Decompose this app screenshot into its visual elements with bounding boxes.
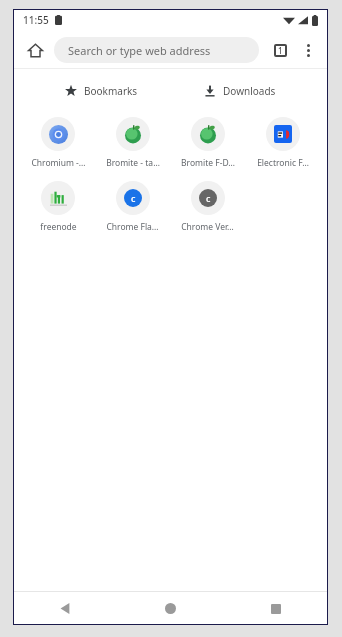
staticText: Bromite - ta… [106, 157, 160, 169]
staticText: c [131, 192, 136, 204]
button[interactable]: Recent apps [223, 592, 328, 625]
button[interactable]: More options [295, 37, 321, 63]
staticText: Chrome Ver… [181, 221, 234, 233]
staticText: Search or type web address [68, 43, 211, 58]
button[interactable]: Home [118, 592, 223, 625]
button[interactable]: Chromium -… [21, 115, 95, 171]
button[interactable]: Back [13, 592, 118, 625]
button[interactable]: Home [20, 35, 50, 65]
button[interactable]: Tabs: 1 [267, 37, 293, 63]
staticText: 11:55 [23, 13, 49, 27]
staticText: c [206, 192, 211, 204]
button[interactable]: freenode [21, 179, 95, 235]
button[interactable]: Downloads [198, 81, 282, 101]
button[interactable]: Bromite F-D… [170, 115, 245, 171]
staticText: Downloads [223, 84, 276, 98]
button[interactable]: Bromite - ta… [95, 115, 170, 171]
button[interactable]: Bookmarks [59, 81, 144, 101]
button[interactable]: Search or type web address [54, 37, 259, 63]
button[interactable]: c [95, 179, 170, 235]
staticText: freenode [40, 221, 77, 233]
staticText: 1 [278, 45, 283, 56]
staticText: Chrome Fla… [106, 221, 159, 233]
staticText: Electronic F… [257, 157, 309, 169]
button[interactable]: c [170, 179, 245, 235]
staticText: Bookmarks [84, 84, 138, 98]
staticText: Chromium -… [31, 157, 86, 169]
button[interactable]: Electronic F… [245, 115, 320, 171]
staticText: Bromite F-D… [181, 157, 235, 169]
